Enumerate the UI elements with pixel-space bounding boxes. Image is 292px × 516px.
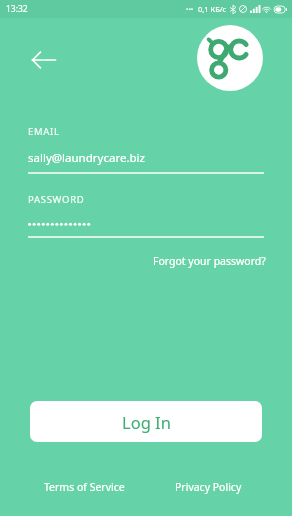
staticText: 0,1 КБ/с [198, 4, 227, 14]
button[interactable]: EMAIL [28, 125, 264, 174]
staticText: Privacy Policy [175, 480, 242, 494]
button[interactable]: PASSWORD [28, 193, 264, 238]
button[interactable]: Log In [30, 401, 262, 442]
button[interactable]: Forgot your password? [151, 251, 268, 271]
staticText: ··· [186, 3, 194, 15]
staticText: sally@laundrycare.biz [28, 150, 145, 166]
staticText: Log In [122, 411, 171, 433]
staticText: EMAIL [28, 125, 60, 138]
staticText: PASSWORD [28, 193, 85, 206]
staticText: Forgot your password? [153, 254, 266, 268]
button[interactable]: Logo [197, 25, 263, 91]
button[interactable]: Back [22, 38, 66, 82]
button[interactable]: Privacy Policy [146, 480, 270, 494]
staticText: 13:32 [6, 3, 28, 15]
button[interactable]: Terms of Service [22, 480, 146, 494]
staticText: Terms of Service [44, 480, 125, 494]
